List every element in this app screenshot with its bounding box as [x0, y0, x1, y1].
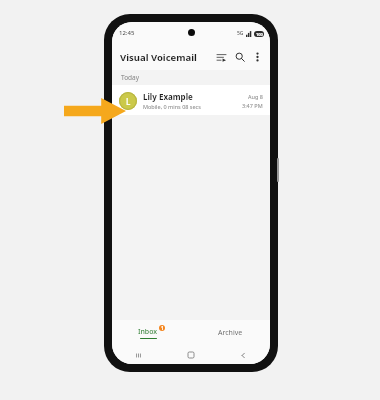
staticText: 12:45 — [119, 29, 135, 37]
button[interactable]: Sort — [213, 49, 229, 65]
staticText: Aug 8 — [248, 93, 263, 100]
button[interactable]: Home — [164, 346, 217, 364]
staticText: Today — [121, 73, 140, 82]
staticText: Inbox — [138, 327, 158, 337]
staticText: Archive — [218, 328, 243, 338]
button[interactable]: Back — [217, 346, 270, 364]
staticText: 3:47 PM — [242, 102, 263, 109]
staticText: L — [126, 96, 131, 107]
staticText: Mobile, 0 mins 08 secs — [143, 103, 201, 110]
staticText: Visual Voicemail — [120, 51, 197, 64]
staticText: 5G — [237, 30, 244, 37]
staticText: 1 — [161, 325, 164, 331]
button[interactable]: Recent apps — [112, 346, 164, 364]
button[interactable]: Inbox — [112, 320, 191, 346]
button[interactable]: Archive — [191, 320, 270, 346]
staticText: Lily Example — [143, 91, 193, 102]
button[interactable]: L — [112, 85, 270, 115]
button[interactable]: More options — [250, 50, 264, 64]
staticText: 100 — [256, 32, 263, 37]
button[interactable]: Search — [232, 49, 248, 65]
